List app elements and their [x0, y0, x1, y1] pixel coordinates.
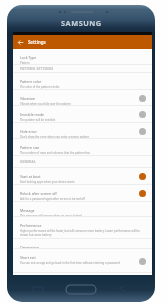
button[interactable]: Relock after screen off — [139, 190, 146, 197]
staticText: Settings — [28, 39, 46, 45]
button[interactable]: Lock Type — [13, 49, 152, 65]
staticText: Message — [20, 208, 35, 213]
button[interactable]: Message — [13, 202, 152, 217]
staticText: Orientation — [20, 245, 39, 249]
staticText: Don't show the error when you enter a wr… — [20, 135, 90, 139]
button[interactable]: Short exit — [139, 258, 146, 265]
staticText: Relock after screen off — [20, 191, 57, 196]
staticText: The number of rows and columns that the … — [20, 151, 90, 155]
staticText: Higher performance will be faster, but w… — [20, 229, 146, 237]
staticText: Vibration — [20, 96, 35, 101]
staticText: PATTERN SETTINGS — [20, 67, 54, 71]
staticText: Pattern — [20, 61, 30, 65]
button[interactable]: Pattern size — [13, 139, 152, 156]
button[interactable]: Vibration — [13, 90, 152, 106]
button[interactable]: Hide error — [13, 123, 152, 139]
button[interactable]: Start at boot — [13, 168, 152, 185]
staticText: Pattern size — [20, 145, 40, 150]
button[interactable]: Start at boot — [139, 173, 146, 180]
staticText: Vibrate when you slide over the pattern — [20, 102, 71, 106]
staticText: GENERAL — [20, 160, 36, 164]
staticText: Ask for a password again after screen is… — [20, 197, 85, 201]
staticText: Start locking apps when your device star… — [20, 180, 75, 184]
staticText: Pattern color — [20, 79, 42, 84]
button[interactable]: Invisible mode — [139, 111, 146, 118]
staticText: This message will appear when an app is … — [20, 214, 82, 217]
staticText: Short exit — [20, 255, 36, 260]
button[interactable]: Invisible mode — [13, 106, 152, 123]
button[interactable]: Vibration — [139, 95, 146, 102]
staticText: Performance — [20, 223, 42, 228]
staticText: The pattern will be invisible — [20, 118, 56, 122]
staticText: SAMSUNG — [61, 18, 102, 28]
button[interactable]: Pattern color — [13, 73, 152, 90]
staticText: Invisible mode — [20, 112, 45, 117]
button[interactable]: Short exit — [13, 249, 152, 273]
button[interactable]: Back — [13, 35, 152, 49]
staticText: The color of the pattern circles — [20, 85, 60, 89]
button[interactable]: Relock after screen off — [13, 185, 152, 202]
staticText: Hide error — [20, 129, 37, 134]
button[interactable]: Performance — [13, 217, 152, 239]
button[interactable]: Orientation — [13, 239, 152, 249]
button[interactable]: Hide error — [139, 128, 146, 135]
staticText: You can exit an app and go back in the f… — [20, 261, 120, 265]
staticText: Lock Type — [20, 55, 37, 60]
staticText: Start at boot — [20, 174, 41, 179]
button[interactable]: Back — [16, 38, 25, 47]
